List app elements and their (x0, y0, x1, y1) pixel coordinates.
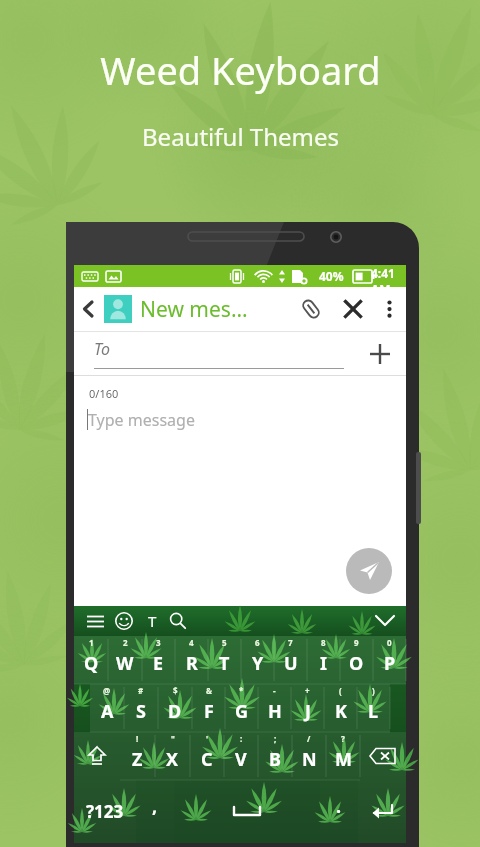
staticText: O (349, 651, 364, 676)
button[interactable]: / (292, 732, 326, 780)
staticText: S (136, 699, 146, 724)
button[interactable]: Comma (136, 780, 174, 843)
staticText: 40% (319, 268, 344, 284)
button[interactable]: 8 (307, 636, 340, 684)
staticText: $ (173, 685, 178, 696)
button[interactable]: 9 (340, 636, 373, 684)
button[interactable]: 3 (142, 636, 175, 684)
button[interactable]: Send (346, 548, 392, 594)
staticText: - (273, 685, 276, 696)
staticText: D (168, 699, 182, 724)
button[interactable]: Text style (140, 609, 164, 633)
button[interactable]: 6 (241, 636, 274, 684)
staticText: : (240, 733, 243, 744)
staticText: Weed Keyboard (100, 44, 381, 96)
button[interactable]: 5 (208, 636, 241, 684)
button[interactable]: & (192, 684, 225, 732)
staticText: 2 (123, 637, 128, 648)
staticText: Q (84, 651, 99, 676)
staticText: X (166, 747, 179, 772)
staticText: 1 (89, 637, 94, 648)
button[interactable]: Enter (358, 780, 406, 843)
staticText: / (307, 733, 311, 744)
staticText: 8 (321, 637, 326, 648)
button[interactable]: 2 (108, 636, 142, 684)
staticText: @ (103, 685, 111, 696)
button[interactable]: Menu (82, 608, 108, 634)
staticText: P (384, 651, 396, 676)
staticText: New mes… (140, 295, 248, 324)
staticText: L (368, 699, 379, 724)
staticText: H (268, 699, 282, 724)
button[interactable]: + (291, 684, 324, 732)
staticText: 3 (156, 637, 161, 648)
button[interactable]: ? (326, 732, 360, 780)
button[interactable]: Search (165, 608, 191, 634)
button[interactable]: New mes… (140, 295, 248, 324)
button[interactable]: Back (74, 287, 104, 331)
staticText: R (186, 651, 198, 676)
staticText: 9 (354, 637, 359, 648)
staticText: 5 (222, 637, 227, 648)
button[interactable]: 7 (274, 636, 307, 684)
staticText: 4:41 AM (371, 265, 406, 287)
staticText: 4 (189, 637, 194, 648)
button[interactable]: Space (174, 780, 320, 843)
staticText: B (269, 747, 281, 772)
button[interactable]: Shift (74, 732, 120, 780)
button[interactable]: 4 (175, 636, 208, 684)
staticText: F (204, 699, 214, 724)
button[interactable]: @ (90, 684, 124, 732)
button[interactable]: : (224, 732, 258, 780)
button[interactable] (104, 295, 132, 323)
staticText: # (138, 685, 144, 696)
staticText: 6 (255, 637, 260, 648)
staticText: K (335, 699, 347, 724)
button[interactable]: # (124, 684, 158, 732)
button[interactable]: ! (120, 732, 155, 780)
button[interactable]: ?123 (74, 780, 136, 843)
staticText: To (94, 338, 110, 360)
staticText: ; (274, 733, 277, 744)
staticText: I (320, 651, 328, 676)
staticText: ) (372, 685, 375, 696)
staticText: ? (341, 733, 345, 744)
staticText: Z (132, 747, 143, 772)
button[interactable]: Add recipient (360, 334, 400, 374)
staticText: W (116, 651, 134, 676)
staticText: & (206, 685, 212, 696)
staticText: G (235, 699, 249, 724)
staticText: A (101, 699, 114, 724)
staticText: " (171, 733, 175, 744)
button[interactable]: 0 (373, 636, 406, 684)
staticText: 0/160 (89, 386, 119, 401)
button[interactable]: Attach (294, 292, 328, 326)
staticText: Beautiful Themes (142, 120, 339, 153)
staticText: ' (206, 733, 209, 744)
staticText: N (302, 747, 317, 772)
button[interactable]: " (155, 732, 190, 780)
staticText: E (153, 651, 164, 676)
button[interactable]: ) (357, 684, 390, 732)
button[interactable]: ( (324, 684, 357, 732)
button[interactable]: Emoji (111, 608, 137, 634)
button[interactable]: 1 (74, 636, 108, 684)
button[interactable]: More options (376, 287, 402, 331)
button[interactable]: ' (190, 732, 224, 780)
button[interactable]: Backspace (360, 732, 406, 780)
button[interactable]: Hide keyboard (368, 606, 402, 636)
staticText: Y (252, 651, 264, 676)
staticText: U (284, 651, 298, 676)
button[interactable]: ; (258, 732, 292, 780)
staticText: * (239, 685, 244, 696)
button[interactable]: * (225, 684, 258, 732)
staticText: 0 (387, 637, 392, 648)
staticText: , (152, 794, 158, 819)
button[interactable]: Close (336, 292, 370, 326)
staticText: Type message (88, 409, 195, 431)
button[interactable]: - (258, 684, 291, 732)
staticText: + (305, 685, 310, 696)
button[interactable]: Period (320, 780, 358, 843)
button[interactable]: $ (158, 684, 192, 732)
staticText: M (335, 747, 352, 772)
